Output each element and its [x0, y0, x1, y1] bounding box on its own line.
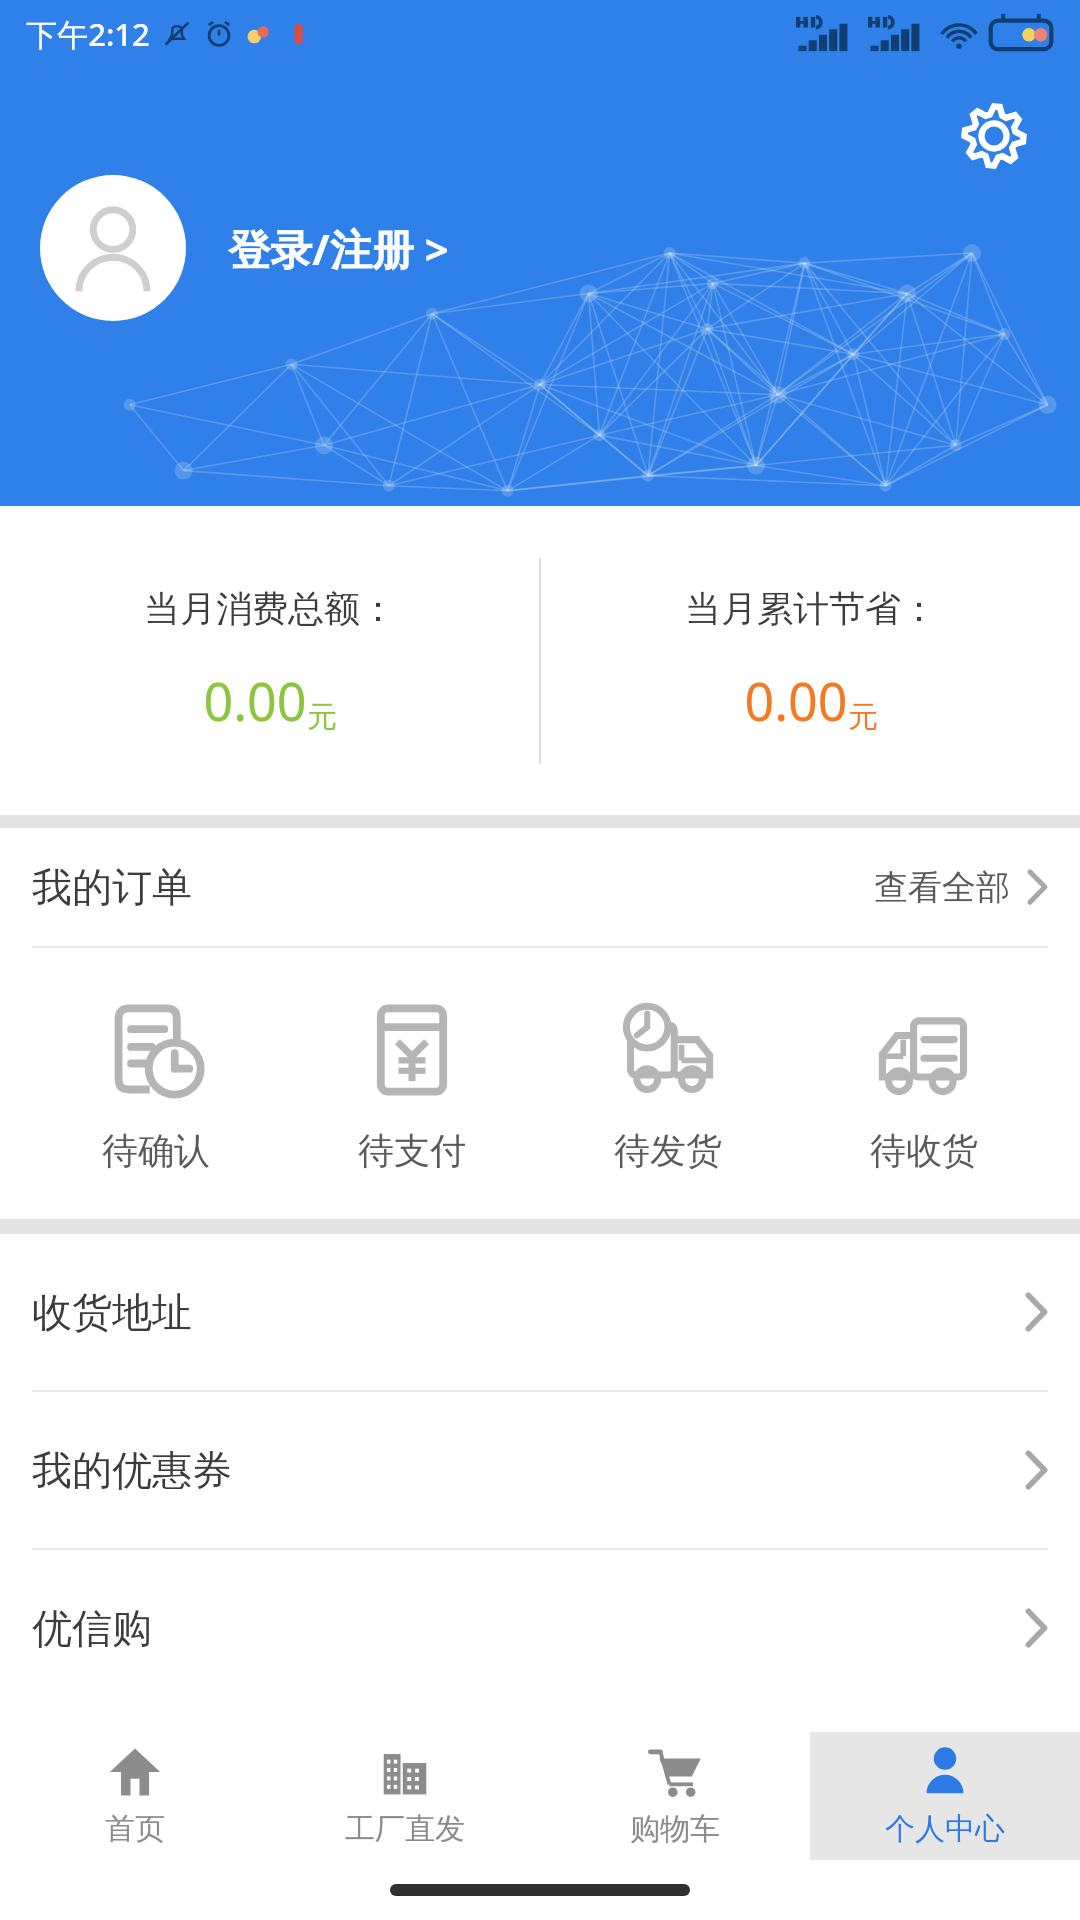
button[interactable]: 收货地址 — [0, 1234, 1080, 1390]
button[interactable]: 我的优惠券 — [0, 1392, 1080, 1548]
button[interactable]: 工厂直发 — [270, 1732, 540, 1860]
staticText: 购物车 — [630, 1810, 720, 1848]
staticText: 元 — [307, 698, 337, 736]
staticText: 我的优惠券 — [32, 1445, 232, 1495]
button[interactable]: 优信购 — [0, 1550, 1080, 1706]
button[interactable]: 购物车 — [540, 1732, 810, 1860]
staticText: 下午2:12 — [26, 13, 150, 55]
staticText: 登录/注册 > — [228, 220, 449, 277]
button[interactable]: 待确认 — [56, 998, 256, 1173]
staticText: 工厂直发 — [345, 1810, 465, 1848]
staticText: 待收货 — [870, 1128, 978, 1173]
staticText: 个人中心 — [885, 1810, 1005, 1848]
staticText: 我的订单 — [32, 862, 192, 912]
button[interactable]: 首页 — [0, 1732, 270, 1860]
button[interactable]: 待支付 — [312, 998, 512, 1173]
button[interactable]: 当月累计节省： — [541, 506, 1080, 815]
staticText: 待确认 — [102, 1128, 210, 1173]
staticText: 优信购 — [32, 1603, 152, 1653]
button[interactable]: 当月消费总额： — [0, 506, 539, 815]
button[interactable]: 个人中心 — [810, 1732, 1080, 1860]
staticText: 查看全部 — [874, 866, 1010, 909]
staticText: 元 — [848, 698, 878, 736]
button[interactable]: 登录/注册 > — [40, 175, 449, 321]
button[interactable]: 待发货 — [568, 998, 768, 1173]
button[interactable]: 待收货 — [824, 998, 1024, 1173]
button[interactable]: Settings — [946, 88, 1042, 184]
staticText: 当月消费总额： — [144, 586, 396, 631]
staticText: 首页 — [105, 1810, 165, 1848]
button[interactable]: 我的订单 — [0, 828, 1080, 946]
staticText: 待支付 — [358, 1128, 466, 1173]
staticText: 当月累计节省： — [685, 586, 937, 631]
staticText: 待发货 — [614, 1128, 722, 1173]
staticText: 0.00 — [744, 665, 848, 736]
staticText: 收货地址 — [32, 1287, 192, 1337]
staticText: 0.00 — [203, 665, 307, 736]
